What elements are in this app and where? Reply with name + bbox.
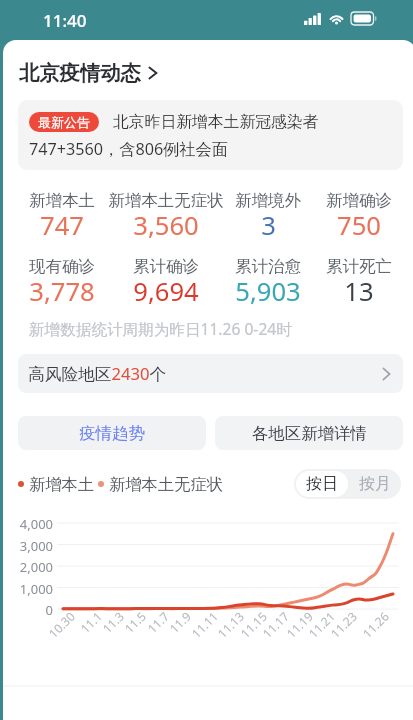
staticText: 11.23 <box>316 608 360 652</box>
staticText: 0 <box>8 601 53 619</box>
staticText: 新增本土 <box>29 190 95 211</box>
staticText: 北京疫情动态 <box>19 60 141 86</box>
staticText: 3,560 <box>133 208 199 243</box>
staticText: 11.9 <box>150 608 194 652</box>
button[interactable]: 北京疫情动态 <box>19 60 165 86</box>
staticText: 3,000 <box>8 537 53 555</box>
staticText: 按月 <box>359 474 391 494</box>
staticText: 1,000 <box>8 580 53 598</box>
staticText: 13 <box>344 274 374 309</box>
staticText: 11.11 <box>177 608 221 652</box>
staticText: 11.26 <box>348 608 392 652</box>
staticText: 疫情趋势 <box>79 423 145 444</box>
staticText: 新增本土 <box>29 474 95 495</box>
staticText: 4,000 <box>8 515 53 533</box>
staticText: 2,000 <box>8 558 53 576</box>
staticText: 11.15 <box>226 608 270 652</box>
staticText: 3,778 <box>29 274 95 309</box>
staticText: 11.7 <box>128 608 172 652</box>
staticText: 11.1 <box>61 608 105 652</box>
staticText: 10.30 <box>34 608 78 652</box>
staticText: 各地区新增详情 <box>252 423 367 444</box>
staticText: 新增本土无症状 <box>108 190 224 211</box>
staticText: 新增确诊 <box>326 190 392 211</box>
staticText: 最新公告 <box>38 114 90 130</box>
staticText: 11:40 <box>43 9 87 32</box>
staticText: 高风险地区2430个 <box>28 362 167 385</box>
button[interactable]: 疫情趋势 <box>18 416 206 450</box>
button[interactable]: 按月 <box>348 469 401 499</box>
staticText: 新增本土无症状 <box>109 474 224 495</box>
staticText: 11.19 <box>272 608 316 652</box>
staticText: 9,694 <box>133 274 199 309</box>
staticText: 747 <box>40 208 84 243</box>
button[interactable]: 最新公告 <box>18 100 403 170</box>
staticText: 11.13 <box>203 608 247 652</box>
staticText: 3 <box>261 208 276 243</box>
button[interactable]: 高风险地区2430个 <box>18 354 403 393</box>
staticText: 5,903 <box>235 274 301 309</box>
button[interactable]: 各地区新增详情 <box>215 416 403 450</box>
staticText: 新增境外 <box>235 190 301 211</box>
button[interactable]: 按日 <box>296 471 348 497</box>
staticText: 11.17 <box>248 608 292 652</box>
staticText: 11.3 <box>83 608 127 652</box>
staticText: 新增数据统计周期为昨日11.26 0-24时 <box>29 318 292 339</box>
staticText: 现有确诊 <box>29 256 95 277</box>
staticText: 11.21 <box>294 608 338 652</box>
staticText: 按日 <box>306 474 338 494</box>
staticText: 北京昨日新增本土新冠感染者 <box>113 112 319 132</box>
staticText: 11.5 <box>105 608 149 652</box>
staticText: 累计治愈 <box>235 256 301 277</box>
staticText: 750 <box>337 208 381 243</box>
staticText: 累计确诊 <box>133 256 199 277</box>
staticText: 累计死亡 <box>326 256 392 277</box>
staticText: 747+3560，含806例社会面 <box>29 138 228 160</box>
